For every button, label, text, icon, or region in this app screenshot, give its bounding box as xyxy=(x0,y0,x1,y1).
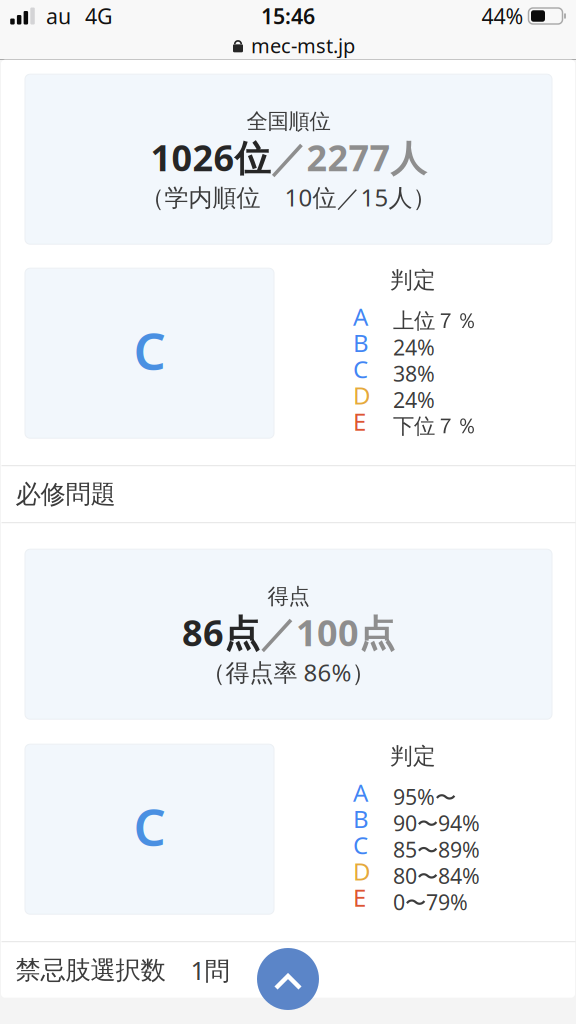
staticText: E xyxy=(353,406,366,437)
staticText: D xyxy=(353,379,371,411)
staticText: C xyxy=(133,793,165,860)
staticText: A xyxy=(353,300,368,332)
staticText: 判定 xyxy=(390,266,436,294)
staticText: 必修問題 xyxy=(15,479,115,510)
staticText: C xyxy=(353,829,368,861)
staticText: C xyxy=(133,317,165,384)
staticText: mec-mst.jp xyxy=(251,32,355,59)
staticText: 90〜94% xyxy=(393,809,480,837)
staticText: C xyxy=(353,353,368,385)
staticText: 全国順位 xyxy=(246,108,330,134)
staticText: 4G xyxy=(85,2,113,30)
staticText: E xyxy=(353,882,366,913)
staticText: 85〜89% xyxy=(393,835,480,864)
staticText: B xyxy=(353,803,369,835)
staticText: 38% xyxy=(393,359,435,388)
staticText: 80〜84% xyxy=(393,861,480,890)
staticText: 24% xyxy=(393,333,435,361)
staticText: 15:46 xyxy=(261,2,315,30)
staticText: 95%〜 xyxy=(393,783,456,811)
staticText: 下位７％ xyxy=(393,413,477,439)
staticText: 86点 xyxy=(182,608,260,656)
staticText: A xyxy=(353,776,368,808)
staticText: ／2277人 xyxy=(270,133,426,181)
staticText: 1026位 xyxy=(150,133,270,181)
staticText: （得点率 86%） xyxy=(201,656,375,688)
staticText: 上位７％ xyxy=(393,308,477,334)
staticText: B xyxy=(353,327,369,359)
staticText: （学内順位 10位／15人） xyxy=(140,181,436,213)
staticText: 24% xyxy=(393,386,435,414)
button[interactable]: mec-mst.jp xyxy=(0,32,576,59)
staticText: D xyxy=(353,855,371,887)
staticText: au xyxy=(46,2,71,30)
staticText: ／100点 xyxy=(260,608,395,656)
staticText: 0〜79% xyxy=(393,888,468,916)
staticText: 判定 xyxy=(390,742,436,770)
staticText: 得点 xyxy=(267,583,309,609)
button[interactable]: Back to top xyxy=(257,948,319,1010)
staticText: 1問 xyxy=(190,953,229,987)
staticText: 禁忌肢選択数 xyxy=(15,955,165,986)
staticText: 44% xyxy=(481,2,523,30)
